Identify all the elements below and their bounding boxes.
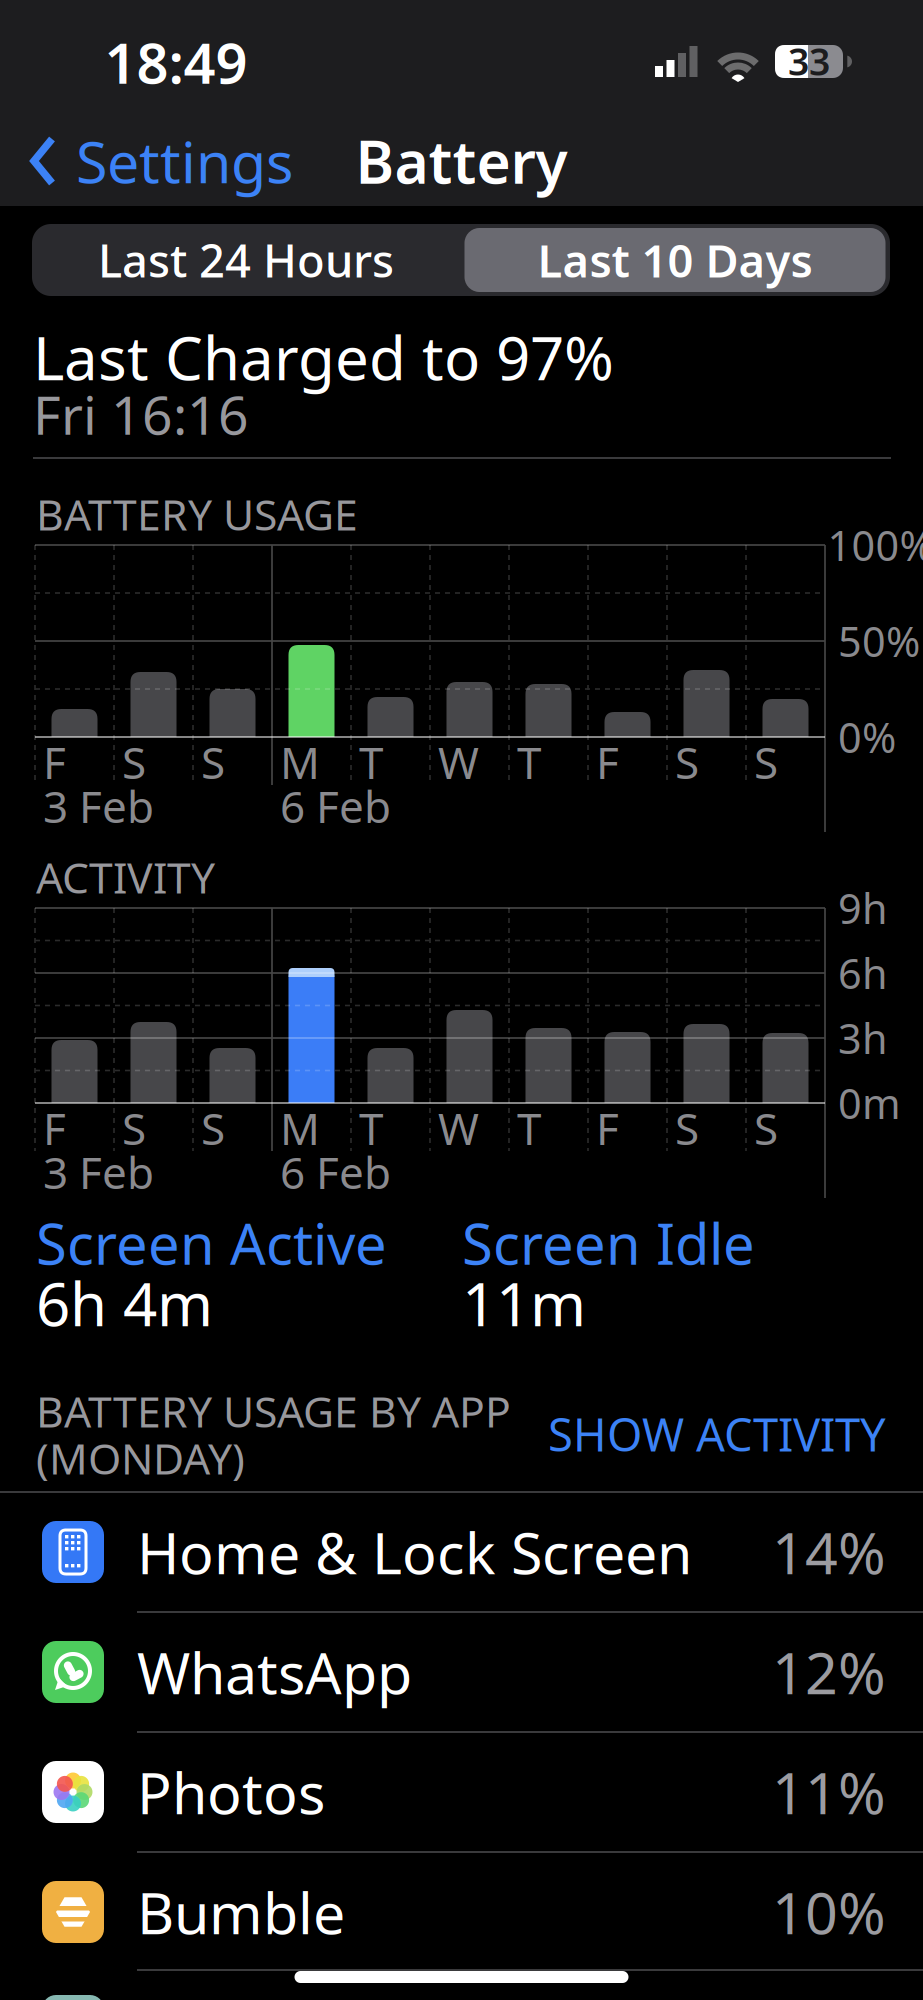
staticText: SHOW ACTIVITY [548,1404,886,1464]
staticText: WhatsApp [137,1634,412,1710]
staticText: (MONDAY) [36,1430,245,1486]
staticText: Bumble [137,1874,345,1950]
staticText: Battery [355,122,567,200]
staticText: S [201,1099,225,1157]
staticText: Last 10 Days [537,230,812,290]
staticText: T [517,733,541,791]
staticText: 11m [462,1263,586,1343]
staticText: BATTERY USAGE BY APP [36,1383,511,1439]
staticText: 10% [772,1874,886,1950]
staticText: 100% [827,518,923,572]
staticText: 14% [772,1514,886,1590]
staticText: S [675,733,699,791]
staticText: 3 Feb [43,777,154,835]
staticText: 6 Feb [280,1143,391,1201]
staticText: F [596,1099,619,1157]
staticText: S [122,1099,146,1157]
staticText: 9h [838,881,888,935]
staticText: F [596,733,619,791]
button[interactable]: WhatsApp [0,1612,923,1732]
staticText: ACTIVITY [36,849,215,905]
button[interactable]: Last 10 Days [464,228,885,292]
staticText: 3 Feb [43,1143,154,1201]
staticText: 0% [838,710,896,764]
staticText: S [201,733,225,791]
staticText: T [359,1099,383,1157]
staticText: Last 24 Hours [98,230,394,290]
staticText: M [280,733,320,791]
staticText: 6 Feb [280,777,391,835]
staticText: W [438,1099,479,1157]
button[interactable]: Photos [0,1732,923,1852]
staticText: 6h 4m [36,1263,213,1343]
staticText: S [122,733,146,791]
staticText: F [43,733,66,791]
staticText: F [43,1099,66,1157]
staticText: Screen Active [36,1206,387,1280]
staticText: Home & Lock Screen [137,1514,692,1590]
button[interactable]: Home & Lock Screen [0,1492,923,1612]
staticText: T [359,733,383,791]
staticText: 12% [772,1634,886,1710]
staticText: Last Charged to 97% [33,317,614,397]
staticText: 0m [838,1076,901,1130]
staticText: 11% [772,1754,886,1830]
staticText: M [280,1099,320,1157]
staticText: Fri 16:16 [33,379,249,449]
staticText: 33 [788,36,830,86]
staticText: T [517,1099,541,1157]
staticText: 3h [838,1011,888,1065]
button[interactable]: SHOW ACTIVITY [548,1404,886,1464]
staticText: Settings [76,123,293,199]
staticText: 6h [838,946,888,1000]
staticText: Photos [137,1754,325,1830]
staticText: S [754,733,778,791]
staticText: 18:49 [104,25,247,99]
staticText: W [438,733,479,791]
staticText: S [675,1099,699,1157]
staticText: S [754,1099,778,1157]
button[interactable]: Last 24 Hours [33,224,458,296]
staticText: 50% [838,614,920,668]
staticText: Screen Idle [462,1206,755,1280]
button[interactable]: Back to Settings [30,123,350,199]
button[interactable]: Bumble [0,1852,923,1972]
staticText: BATTERY USAGE [36,486,358,542]
